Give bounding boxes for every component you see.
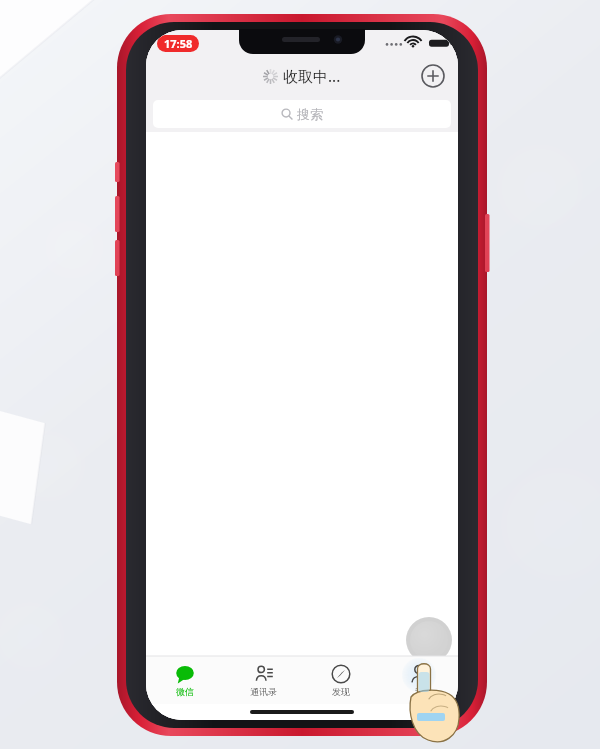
button[interactable]: 搜索: [153, 100, 451, 128]
staticText: 微信: [176, 686, 194, 697]
button[interactable]: Add: [420, 63, 446, 89]
staticText: 通讯录: [250, 686, 277, 697]
button[interactable]: 微信: [146, 656, 224, 704]
staticText: 收取中...: [283, 66, 341, 86]
button[interactable]: 通讯录: [224, 656, 302, 704]
staticText: 17:58: [164, 36, 193, 51]
staticText: 搜索: [297, 106, 323, 122]
button[interactable]: 发现: [302, 656, 380, 704]
button[interactable]: 我: [380, 656, 458, 704]
button[interactable]: Assistive touch: [406, 617, 452, 663]
staticText: 我: [415, 686, 424, 697]
staticText: 发现: [332, 686, 350, 697]
